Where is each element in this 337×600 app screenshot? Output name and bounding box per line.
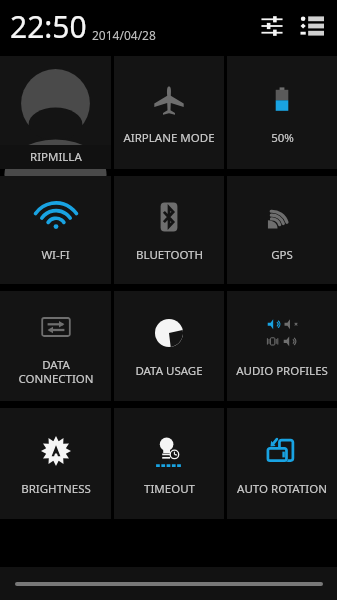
staticText: GPS — [271, 247, 293, 263]
staticText: AUTO ROTATION — [237, 481, 327, 497]
staticText: AIRPLANE MODE — [123, 130, 215, 146]
button[interactable]: User RIPMILLA — [0, 56, 111, 169]
button[interactable]: TIMEOUT — [114, 408, 224, 519]
staticText: WI-FI — [41, 247, 70, 263]
button[interactable]: GPS — [227, 176, 337, 284]
button[interactable]: BLUETOOTH — [114, 176, 224, 284]
button[interactable]: BRIGHTNESS — [0, 408, 111, 519]
staticText: BRIGHTNESS — [21, 481, 91, 497]
staticText: DATA CONNECTION — [18, 357, 94, 386]
staticText: DATA USAGE — [135, 363, 203, 379]
button[interactable]: AIRPLANE MODE — [114, 56, 224, 169]
button[interactable]: 50% — [227, 56, 337, 169]
button[interactable]: DATA CONNECTION — [0, 291, 111, 401]
button[interactable]: AUTO ROTATION — [227, 408, 337, 519]
button[interactable]: Settings — [257, 11, 287, 41]
staticText: BLUETOOTH — [136, 247, 203, 263]
button[interactable]: AUDIO PROFILES — [227, 291, 337, 401]
staticText: TIMEOUT — [144, 481, 195, 497]
staticText: 2014/04/28 — [92, 27, 156, 43]
staticText: 22:50 — [10, 6, 87, 47]
button[interactable]: WI-FI — [0, 176, 111, 284]
staticText: 50% — [271, 130, 294, 146]
staticText: RIPMILLA — [30, 149, 82, 165]
button[interactable]: Notifications — [297, 11, 327, 41]
staticText: AUDIO PROFILES — [236, 363, 328, 379]
button[interactable]: DATA USAGE — [114, 291, 224, 401]
